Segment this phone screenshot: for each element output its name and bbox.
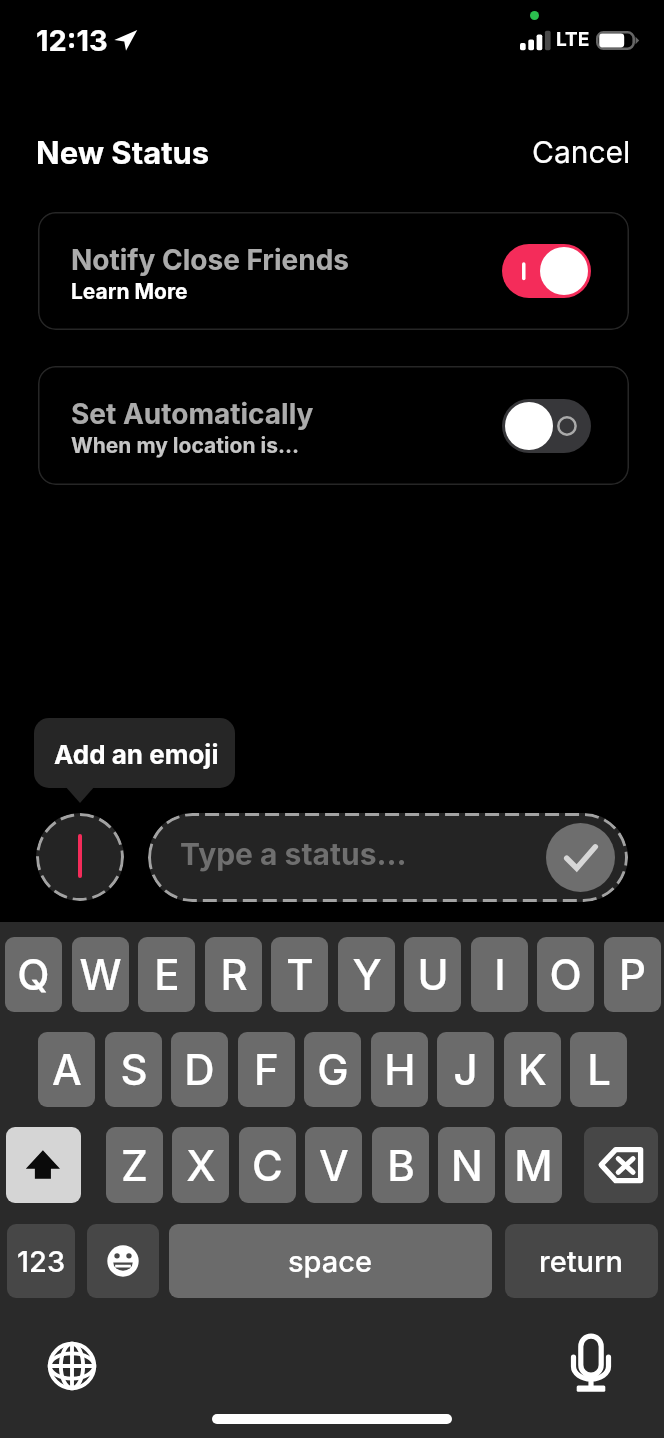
staticText: Set Automatically: [71, 397, 314, 431]
staticText: L: [587, 1044, 611, 1095]
staticText: U: [417, 949, 449, 1000]
button[interactable]: X: [172, 1127, 229, 1203]
button[interactable]: Cancel: [532, 134, 631, 170]
staticText: N: [451, 1140, 483, 1191]
staticText: Q: [17, 949, 50, 1000]
staticText: X: [186, 1140, 216, 1191]
staticText: Learn More: [71, 279, 188, 304]
button[interactable]: Notify Close Friends: [38, 212, 629, 330]
button[interactable]: Emoji keyboard: [87, 1224, 159, 1298]
button[interactable]: Y: [338, 937, 395, 1012]
button[interactable]: Q: [5, 937, 62, 1012]
button[interactable]: F: [238, 1032, 295, 1107]
button[interactable]: Toggle off: [502, 399, 591, 453]
staticText: V: [319, 1140, 349, 1191]
staticText: return: [539, 1244, 624, 1279]
button[interactable]: Backspace: [584, 1127, 658, 1203]
staticText: D: [184, 1044, 215, 1095]
staticText: T: [286, 949, 314, 1000]
staticText: A: [52, 1044, 82, 1095]
button[interactable]: V: [305, 1127, 362, 1203]
staticText: B: [387, 1140, 415, 1191]
staticText: M: [514, 1140, 553, 1191]
button[interactable]: Submit status: [546, 823, 615, 892]
button[interactable]: C: [239, 1127, 296, 1203]
button[interactable]: N: [438, 1127, 495, 1203]
staticText: R: [220, 949, 248, 1000]
button[interactable]: O: [537, 937, 594, 1012]
button[interactable]: return: [505, 1224, 658, 1298]
staticText: O: [549, 949, 582, 1000]
staticText: Y: [352, 949, 382, 1000]
button[interactable]: L: [570, 1032, 627, 1107]
button[interactable]: T: [271, 937, 328, 1012]
button[interactable]: Add an emoji: [36, 813, 124, 901]
staticText: Type a status…: [180, 836, 407, 872]
button[interactable]: G: [304, 1032, 361, 1107]
staticText: 123: [17, 1244, 66, 1279]
button[interactable]: P: [604, 937, 661, 1012]
button[interactable]: J: [437, 1032, 494, 1107]
button[interactable]: Shift: [6, 1127, 81, 1203]
button[interactable]: Z: [106, 1127, 163, 1203]
button[interactable]: Set Automatically: [38, 366, 629, 485]
staticText: F: [254, 1044, 279, 1095]
button[interactable]: M: [505, 1127, 562, 1203]
staticText: When my location is…: [71, 433, 299, 458]
staticText: W: [79, 949, 122, 1000]
staticText: New Status: [36, 134, 210, 172]
staticText: Notify Close Friends: [71, 243, 349, 277]
button[interactable]: Toggle on: [502, 244, 591, 298]
button[interactable]: K: [504, 1032, 561, 1107]
button[interactable]: Add an emoji: [34, 718, 235, 788]
staticText: Cancel: [532, 134, 631, 170]
staticText: Z: [121, 1140, 148, 1191]
staticText: J: [453, 1044, 478, 1095]
button[interactable]: space: [169, 1224, 492, 1298]
staticText: space: [288, 1244, 373, 1279]
button[interactable]: E: [138, 937, 195, 1012]
staticText: H: [384, 1044, 416, 1095]
button[interactable]: W: [72, 937, 129, 1012]
staticText: E: [154, 949, 180, 1000]
staticText: S: [120, 1044, 148, 1095]
button[interactable]: A: [38, 1032, 95, 1107]
button[interactable]: S: [105, 1032, 162, 1107]
staticText: C: [252, 1140, 283, 1191]
button[interactable]: 123: [7, 1224, 75, 1298]
staticText: I: [494, 949, 506, 1000]
button[interactable]: Voice input: [571, 1334, 615, 1394]
button[interactable]: Type a status…: [148, 813, 628, 902]
button[interactable]: H: [371, 1032, 428, 1107]
button[interactable]: I: [471, 937, 528, 1012]
button[interactable]: B: [372, 1127, 429, 1203]
staticText: Add an emoji: [54, 739, 219, 770]
staticText: P: [619, 949, 646, 1000]
staticText: 12:13: [36, 23, 108, 58]
staticText: LTE: [556, 28, 590, 51]
button[interactable]: U: [404, 937, 461, 1012]
button[interactable]: D: [171, 1032, 228, 1107]
button[interactable]: R: [205, 937, 262, 1012]
staticText: K: [518, 1044, 547, 1095]
button[interactable]: Change keyboard: [46, 1340, 98, 1392]
staticText: G: [317, 1044, 349, 1095]
